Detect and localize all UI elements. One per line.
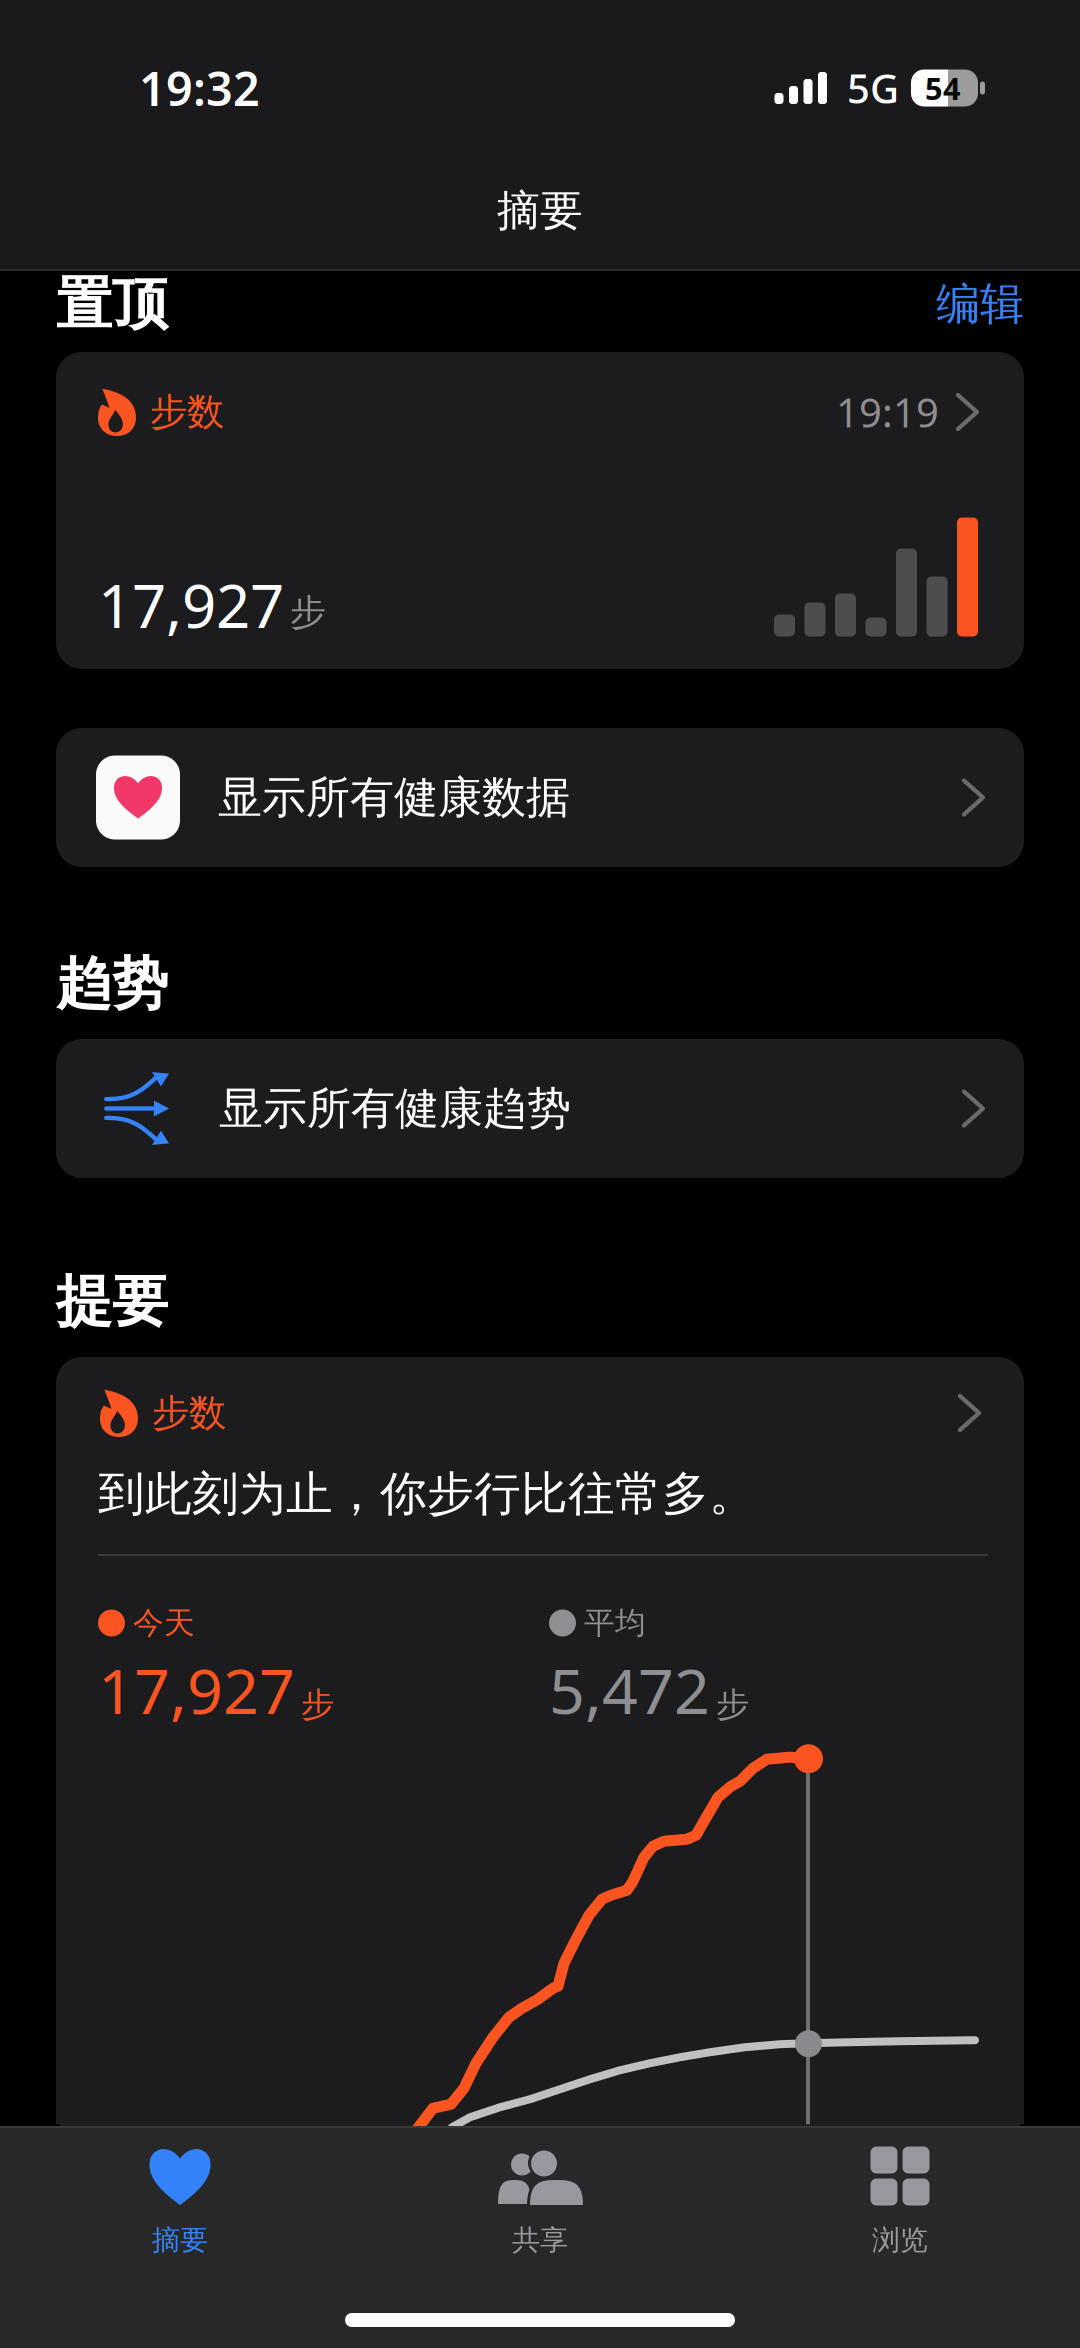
staticText: 趋势 <box>56 950 168 1018</box>
staticText: 步 <box>290 590 326 634</box>
button[interactable]: 步数 <box>56 1357 1024 2137</box>
staticText: 摘要 <box>152 2223 208 2257</box>
button[interactable]: 编辑 <box>936 277 1024 331</box>
staticText: 17,927 <box>98 565 284 644</box>
staticText: 19:32 <box>139 57 260 119</box>
staticText: 到此刻为止，你步行比往常多。 <box>98 1465 756 1523</box>
button[interactable]: 步数 <box>56 352 1024 669</box>
staticText: 5,472 <box>549 1648 710 1731</box>
staticText: 显示所有健康数据 <box>218 770 570 824</box>
staticText: 17,927 <box>98 1648 295 1731</box>
staticText: 提要 <box>56 1267 168 1336</box>
staticText: 浏览 <box>872 2223 928 2257</box>
staticText: 54 <box>925 68 961 108</box>
staticText: 显示所有健康趋势 <box>219 1081 571 1135</box>
staticText: 步数 <box>150 389 224 435</box>
staticText: 步 <box>716 1684 749 1725</box>
button[interactable]: 显示所有健康趋势 <box>56 1039 1024 1178</box>
button[interactable]: 显示所有健康数据 <box>56 728 1024 867</box>
staticText: 共享 <box>512 2223 568 2257</box>
staticText: 编辑 <box>936 277 1024 331</box>
staticText: 摘要 <box>497 185 583 237</box>
staticText: 步 <box>301 1684 334 1725</box>
button[interactable]: 浏览 <box>720 2128 1080 2267</box>
button[interactable]: 摘要 <box>0 2128 360 2267</box>
staticText: 步数 <box>152 1390 226 1436</box>
staticText: 平均 <box>584 1604 646 1642</box>
staticText: 19:19 <box>836 385 939 438</box>
staticText: 5G <box>847 61 899 114</box>
staticText: 置顶 <box>56 270 168 338</box>
button[interactable]: 共享 <box>360 2128 720 2267</box>
staticText: 今天 <box>133 1604 195 1642</box>
